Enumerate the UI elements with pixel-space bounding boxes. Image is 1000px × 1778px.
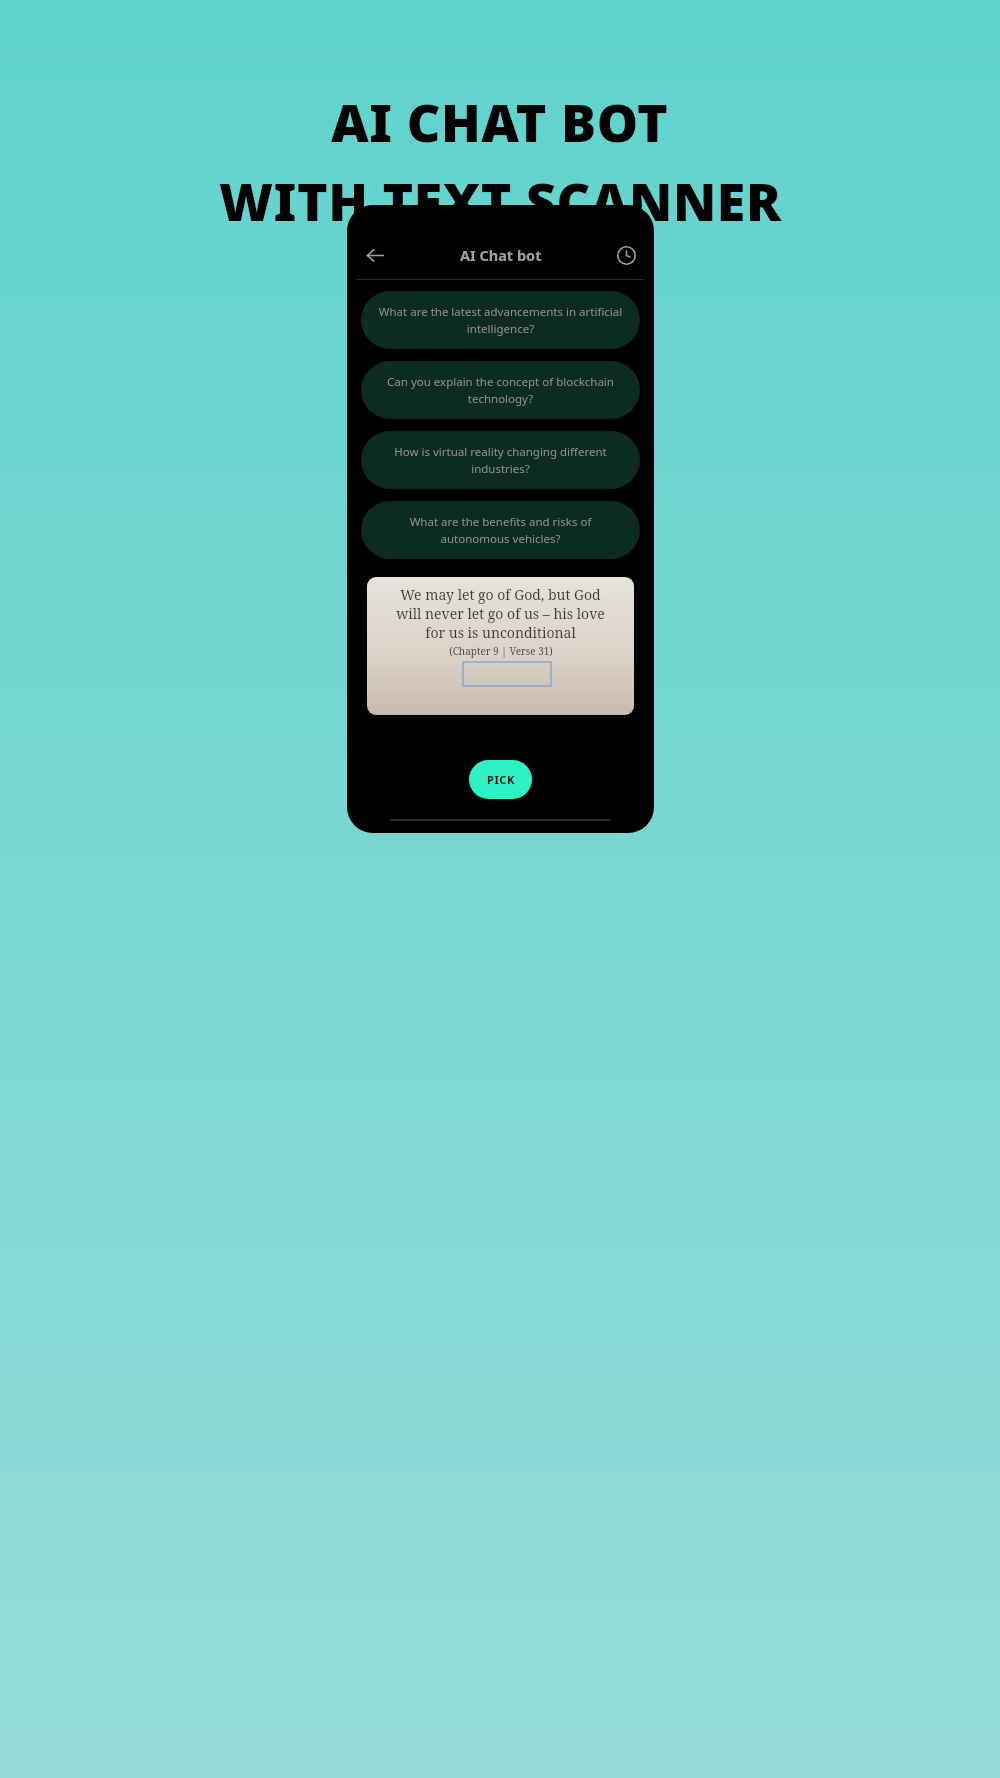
staticText: Can you explain the concept of blockchai… — [377, 374, 624, 406]
staticText: will never let go of us – his love — [396, 604, 605, 623]
staticText: PICK — [487, 772, 515, 787]
staticText: AI CHAT BOT — [331, 86, 669, 157]
staticText: How is virtual reality changing differen… — [377, 444, 624, 476]
staticText: WITH TEXT SCANNER — [219, 165, 782, 236]
button[interactable]: Can you explain the concept of blockchai… — [361, 361, 640, 419]
button[interactable]: Back — [360, 240, 390, 270]
button[interactable]: What are the benefits and risks of auton… — [361, 501, 640, 559]
button[interactable]: How is virtual reality changing differen… — [361, 431, 640, 489]
button[interactable]: What are the latest advancements in arti… — [361, 291, 640, 349]
button[interactable]: History — [611, 240, 641, 270]
staticText: (Chapter 9 | Verse 31) — [449, 644, 553, 658]
staticText: for us is unconditional — [425, 623, 576, 642]
staticText: What are the latest advancements in arti… — [377, 304, 624, 336]
staticText: AI Chat bot — [460, 245, 542, 265]
staticText: We may let go of God, but God — [400, 585, 601, 604]
staticText: What are the benefits and risks of auton… — [377, 514, 624, 546]
button[interactable]: PICK — [469, 760, 532, 799]
